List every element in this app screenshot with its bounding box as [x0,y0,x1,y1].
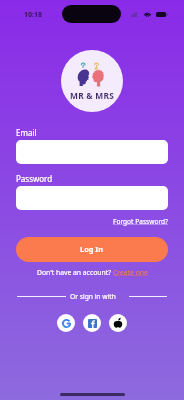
button[interactable]: Sign in with Apple [109,314,127,332]
staticText: Password [16,173,53,184]
button[interactable]: Log In [16,237,168,262]
button[interactable]: Create one [113,268,148,277]
button[interactable]: Password input [16,186,168,210]
staticText: MR & MRS [70,90,115,101]
button[interactable]: Sign in with Facebook [83,314,101,332]
staticText: Log In [80,244,104,254]
button[interactable]: Sign in with Google [57,314,75,332]
staticText: Email [16,127,37,138]
button[interactable]: Mr & Mrs logo [61,50,123,112]
staticText: 10:18 [24,10,42,20]
button[interactable]: Forgot Password? [113,217,168,226]
staticText: Or sign in with [70,292,116,301]
staticText: Don't have an account? [37,268,113,277]
button[interactable]: Email input [16,140,168,164]
